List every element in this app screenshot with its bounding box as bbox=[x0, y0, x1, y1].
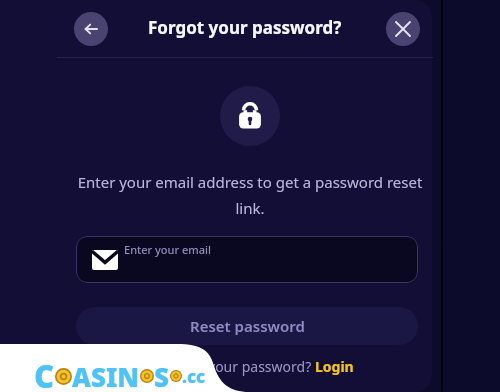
staticText: your password? bbox=[208, 357, 315, 376]
staticText: Login bbox=[315, 357, 354, 376]
button[interactable]: Login bbox=[315, 357, 354, 376]
staticText: Reset password bbox=[190, 316, 305, 336]
button[interactable]: Back bbox=[74, 12, 108, 46]
button[interactable]: Close bbox=[386, 12, 420, 46]
staticText: ASIN bbox=[72, 359, 140, 392]
button[interactable]: Reset password bbox=[76, 307, 418, 345]
staticText: S bbox=[154, 359, 170, 392]
staticText: Enter your email address to get a passwo… bbox=[66, 172, 434, 219]
staticText: C bbox=[34, 355, 55, 392]
staticText: Enter your email bbox=[124, 242, 211, 257]
button[interactable]: Enter your email bbox=[76, 236, 418, 283]
staticText: Forgot your password? bbox=[148, 16, 342, 39]
staticText: .cc bbox=[182, 365, 206, 388]
